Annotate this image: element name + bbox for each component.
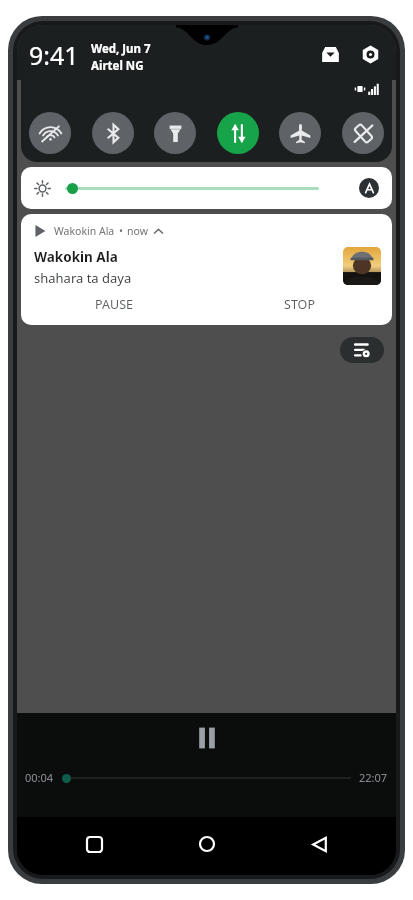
staticText: Wakokin Ala bbox=[54, 224, 115, 238]
button[interactable]: STOP bbox=[206, 296, 392, 313]
staticText: 00:04 bbox=[25, 770, 54, 785]
button[interactable]: Settings bbox=[356, 40, 384, 68]
button[interactable]: Auto brightness bbox=[21, 167, 392, 209]
staticText: shahara ta daya bbox=[34, 269, 132, 287]
button[interactable]: Recents bbox=[77, 827, 111, 861]
staticText: Wed, Jun 7 bbox=[91, 41, 151, 57]
staticText: Airtel NG bbox=[91, 58, 144, 74]
staticText: 9:41 bbox=[29, 38, 79, 72]
button[interactable]: PAUSE bbox=[21, 296, 206, 313]
button[interactable]: Wakokin Ala bbox=[21, 214, 392, 325]
button[interactable]: Flashlight bbox=[154, 112, 196, 154]
button[interactable]: Auto-rotate off bbox=[342, 112, 384, 154]
button[interactable]: Inbox bbox=[316, 40, 344, 68]
staticText: • bbox=[119, 224, 123, 238]
staticText: 22:07 bbox=[359, 770, 388, 785]
staticText: PAUSE bbox=[95, 296, 133, 313]
staticText: STOP bbox=[284, 296, 315, 313]
button[interactable]: Manage notifications bbox=[340, 337, 384, 363]
button[interactable]: Back bbox=[302, 827, 336, 861]
button[interactable]: Bluetooth bbox=[92, 112, 134, 154]
staticText: Wakokin Ala bbox=[34, 248, 118, 266]
button[interactable]: Home bbox=[190, 827, 224, 861]
button[interactable]: Auto brightness bbox=[359, 178, 379, 198]
button[interactable]: Pause bbox=[194, 725, 220, 751]
button[interactable]: Mobile data bbox=[217, 112, 259, 154]
button[interactable]: Airplane mode bbox=[279, 112, 321, 154]
button[interactable]: Wi-Fi off bbox=[29, 112, 71, 154]
staticText: now bbox=[127, 224, 148, 238]
